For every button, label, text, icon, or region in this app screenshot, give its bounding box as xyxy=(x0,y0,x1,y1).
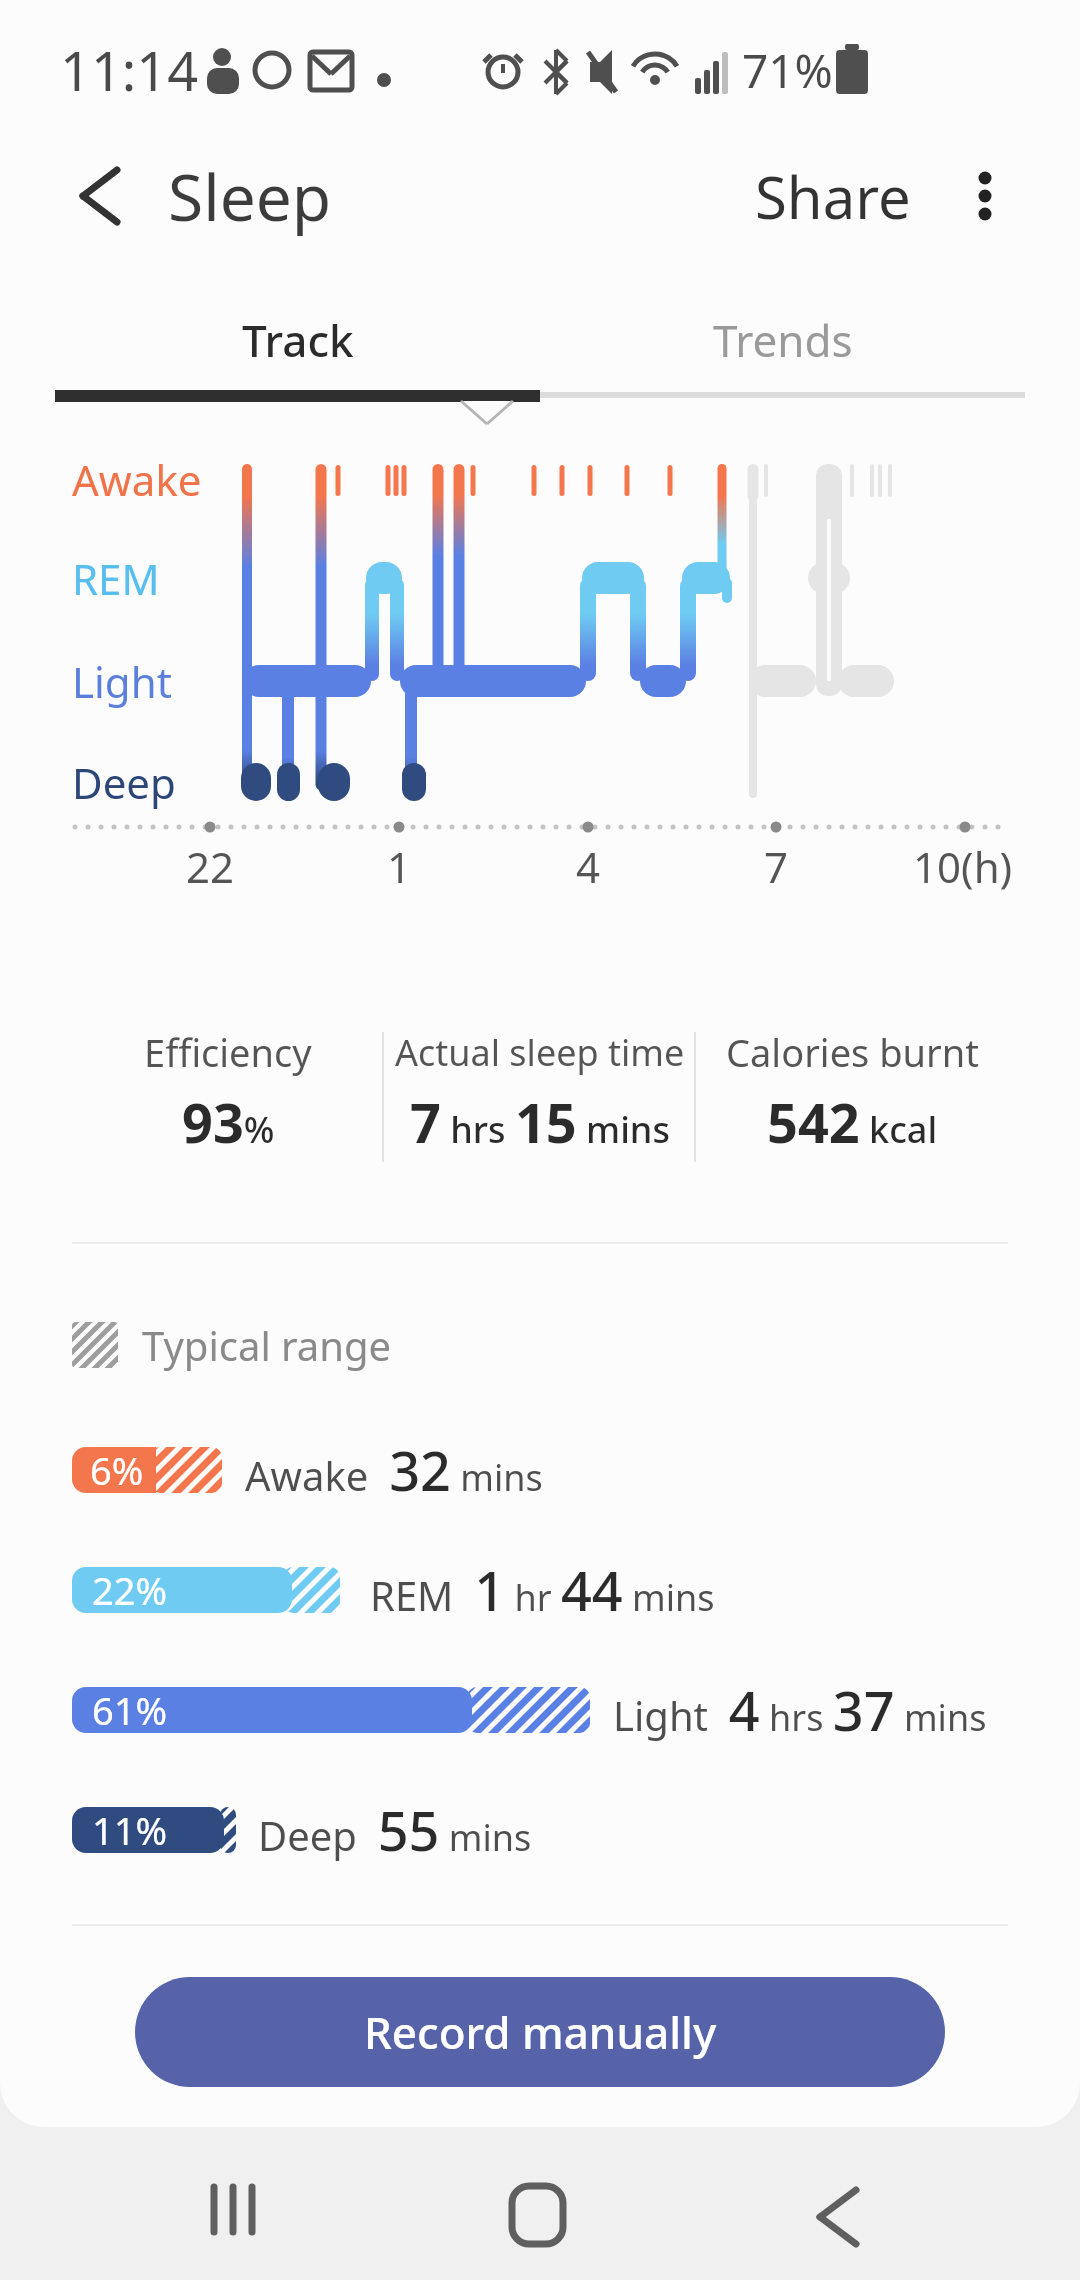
staticText: Awake 32 mins xyxy=(245,1433,543,1507)
staticText: 71% xyxy=(742,39,833,102)
staticText: Sleep xyxy=(168,153,332,240)
button[interactable] xyxy=(758,2150,918,2270)
staticText: Calories burnt xyxy=(726,1026,979,1078)
staticText: 11% xyxy=(92,1804,168,1856)
staticText: Typical range xyxy=(142,1318,392,1372)
staticText: Light 4 hrs 37 mins xyxy=(613,1673,987,1747)
button[interactable]: Trends xyxy=(540,290,1025,390)
staticText: Record manually xyxy=(364,2002,717,2062)
button[interactable]: Record manually xyxy=(135,1977,945,2087)
staticText: 93% xyxy=(182,1085,275,1159)
staticText: Share xyxy=(755,157,911,236)
staticText: Deep xyxy=(72,754,176,811)
staticText: 4 xyxy=(576,838,601,895)
button[interactable]: Share xyxy=(740,146,925,246)
staticText: 7 xyxy=(764,838,789,895)
button[interactable] xyxy=(940,146,1030,246)
staticText: 22 xyxy=(186,838,235,895)
staticText: Light xyxy=(72,653,172,710)
staticText: 61% xyxy=(92,1684,168,1736)
button[interactable]: Track xyxy=(55,290,540,390)
staticText: 7 hrs 15 mins xyxy=(410,1085,670,1159)
staticText: Efficiency xyxy=(144,1026,312,1078)
staticText: 6% xyxy=(90,1444,144,1496)
staticText: REM xyxy=(72,550,160,607)
staticText: 22% xyxy=(92,1564,168,1616)
staticText: 542 kcal xyxy=(767,1085,938,1159)
staticText: Deep 55 mins xyxy=(258,1793,532,1867)
staticText: 11:14 xyxy=(60,33,199,107)
staticText: Awake xyxy=(72,451,202,508)
button[interactable] xyxy=(457,2150,617,2270)
staticText: REM 1 hr 44 mins xyxy=(370,1553,715,1627)
staticText: Trends xyxy=(713,310,853,370)
staticText: 10(h) xyxy=(913,838,1013,895)
button[interactable] xyxy=(153,2150,313,2270)
staticText: 1 xyxy=(387,838,412,895)
staticText: Actual sleep time xyxy=(395,1028,685,1077)
staticText: Track xyxy=(242,310,354,370)
button[interactable] xyxy=(60,140,150,250)
